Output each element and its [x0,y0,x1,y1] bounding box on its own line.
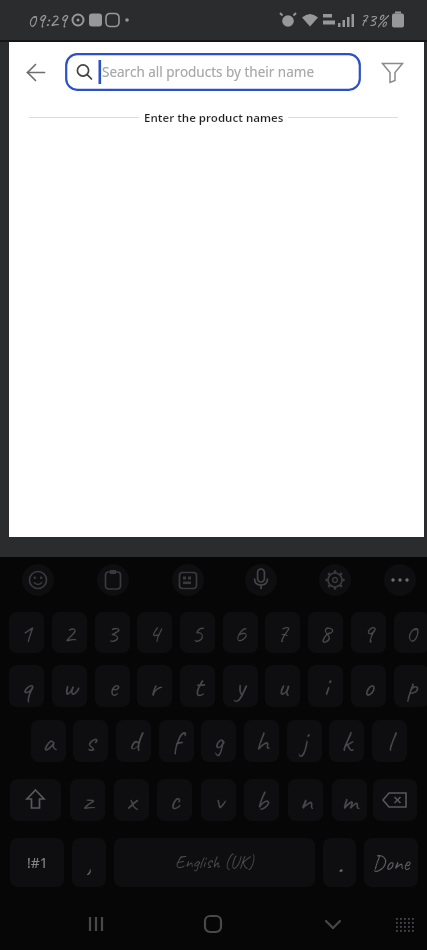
button[interactable]: 2 [52,612,87,653]
staticText: 3 [106,616,119,650]
button[interactable]: o [351,665,386,707]
staticText: c [169,781,180,819]
staticText: Search all products by their name [102,63,315,81]
button[interactable]: v [201,779,236,821]
button[interactable]: 8 [308,612,343,653]
staticText: !#1 [27,853,48,872]
staticText: 7 [276,616,289,650]
button[interactable] [373,779,417,821]
button[interactable]: 4 [137,612,172,653]
staticText: n [299,781,313,819]
button[interactable]: y [223,665,258,707]
button[interactable] [22,564,54,596]
button[interactable]: English (UK) [114,838,315,887]
button[interactable] [319,564,351,596]
staticText: i [323,667,329,705]
staticText: 8 [319,616,332,650]
button[interactable]: 0 [394,612,427,653]
staticText: 73% [359,8,388,32]
staticText: x [126,781,137,819]
button[interactable] [197,908,229,940]
button[interactable] [19,56,52,89]
button[interactable] [80,908,112,940]
button[interactable]: u [265,665,300,707]
staticText: z [83,781,93,819]
staticText: s [85,722,96,760]
button[interactable]: a [31,720,66,762]
button[interactable]: 9 [351,612,386,653]
button[interactable]: 7 [265,612,300,653]
button[interactable]: b [244,779,279,821]
button[interactable]: !#1 [10,838,64,887]
button[interactable]: c [157,779,192,821]
button[interactable]: t [180,665,215,707]
staticText: e [108,667,118,705]
button[interactable] [377,56,409,88]
staticText: k [341,722,352,760]
button[interactable]: i [308,665,343,707]
staticText: a [42,722,56,760]
button[interactable]: 6 [223,612,258,653]
staticText: q [21,667,33,705]
staticText: g [213,722,224,760]
button[interactable]: q [9,665,44,707]
staticText: f [172,722,181,760]
staticText: 9 [362,616,375,650]
staticText: p [406,667,418,705]
staticText: t [193,667,203,705]
staticText: Enter the product names [144,110,284,126]
staticText: v [214,781,224,819]
staticText: j [301,722,308,760]
staticText: 09:29 [27,8,67,33]
button[interactable] [384,564,416,596]
staticText: w [62,667,78,705]
button[interactable]: 5 [180,612,215,653]
staticText: m [341,781,358,819]
button[interactable]: e [95,665,130,707]
button[interactable]: s [73,720,108,762]
button[interactable]: Done [364,838,418,887]
button[interactable]: h [244,720,279,762]
staticText: English (UK) [175,851,254,874]
button[interactable]: n [288,779,323,821]
button[interactable]: 3 [95,612,130,653]
staticText: h [255,722,269,760]
button[interactable] [388,908,420,940]
button[interactable]: x [114,779,149,821]
button[interactable] [317,908,349,940]
button[interactable]: d [116,720,151,762]
button[interactable] [245,564,277,596]
staticText: 5 [191,616,204,650]
staticText: d [128,722,140,760]
staticText: 0 [405,616,418,650]
staticText: l [387,722,393,760]
button[interactable]: p [394,665,427,707]
staticText: Done [372,849,410,877]
staticText: u [277,667,289,705]
staticText: 4 [148,616,161,650]
button[interactable]: k [329,720,364,762]
staticText: y [235,667,246,705]
staticText: 1 [20,616,33,650]
button[interactable]: . [323,838,356,887]
button[interactable]: 1 [9,612,44,653]
button[interactable]: r [137,665,172,707]
staticText: , [86,844,92,882]
button[interactable]: f [159,720,194,762]
button[interactable]: g [201,720,236,762]
staticText: . [337,844,343,882]
button[interactable] [172,564,204,596]
button[interactable]: Search all products by their name [65,53,361,91]
button[interactable] [97,564,129,596]
staticText: 2 [63,616,76,650]
button[interactable]: , [72,838,106,887]
button[interactable]: m [332,779,367,821]
staticText: b [255,781,269,819]
button[interactable]: w [52,665,87,707]
button[interactable] [10,779,61,821]
button[interactable]: j [287,720,322,762]
button[interactable]: z [70,779,105,821]
staticText: 6 [234,616,247,650]
button[interactable]: l [372,720,407,762]
staticText: o [363,667,374,705]
